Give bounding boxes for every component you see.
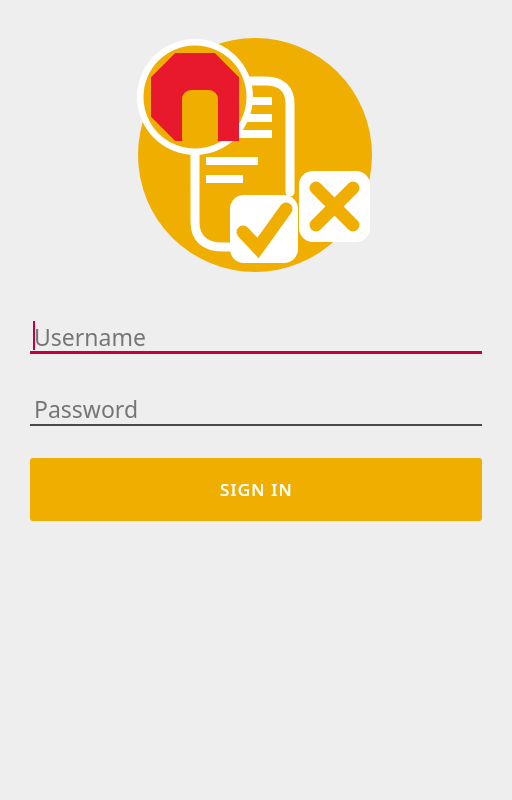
button[interactable]: SIGN IN xyxy=(30,458,482,521)
button[interactable]: Username xyxy=(30,318,482,354)
staticText: SIGN IN xyxy=(220,478,293,501)
staticText: Username xyxy=(34,321,146,352)
staticText: Password xyxy=(34,393,139,424)
button[interactable]: Password xyxy=(30,390,482,426)
other: App logo xyxy=(130,30,384,284)
